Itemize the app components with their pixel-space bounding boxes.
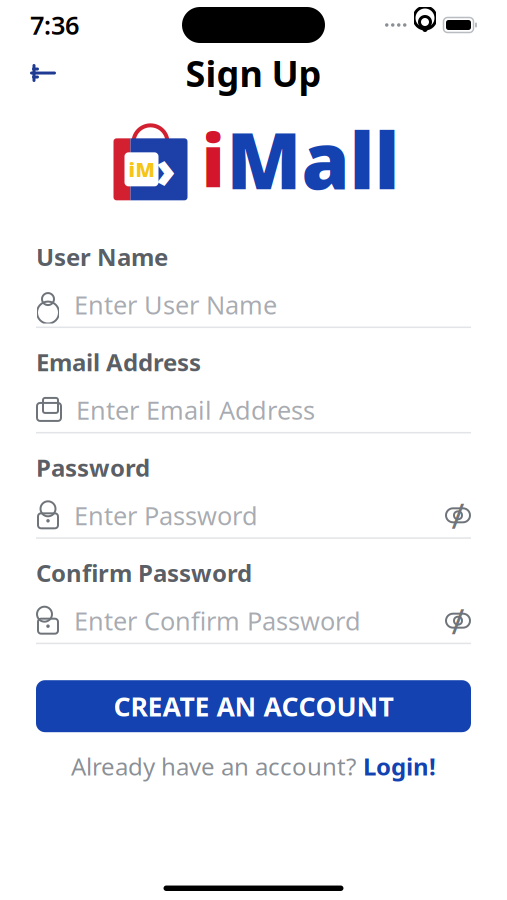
staticText: Mall — [226, 108, 399, 211]
button[interactable]: Show confirm password — [445, 609, 471, 633]
staticText: Enter User Name — [74, 288, 277, 321]
staticText: iM — [128, 156, 154, 183]
button[interactable]: Back — [14, 54, 72, 92]
button[interactable]: Enter Password — [36, 493, 471, 539]
button[interactable]: CREATE AN ACCOUNT — [36, 680, 471, 732]
staticText: Confirm Password — [36, 557, 252, 589]
button[interactable]: Already have an account? — [51, 742, 456, 790]
staticText: Sign Up — [185, 49, 321, 97]
staticText: Email Address — [36, 346, 201, 378]
staticText: 7:36 — [30, 8, 79, 42]
staticText: i — [201, 111, 224, 207]
button[interactable]: Enter Confirm Password — [36, 599, 471, 644]
staticText: User Name — [36, 241, 168, 273]
staticText: Login! — [363, 750, 436, 782]
staticText: / — [451, 492, 464, 538]
button[interactable]: Enter User Name — [36, 283, 471, 328]
staticText: Enter Confirm Password — [74, 604, 361, 637]
button[interactable]: Show password — [445, 503, 471, 527]
staticText: CREATE AN ACCOUNT — [113, 688, 393, 724]
staticText: Already have an account? — [71, 750, 356, 782]
staticText: › — [155, 135, 175, 202]
staticText: / — [451, 598, 464, 644]
staticText: Enter Email Address — [76, 393, 315, 427]
button[interactable]: Enter Email Address — [36, 388, 471, 433]
staticText: Enter Password — [74, 498, 258, 532]
staticText: Password — [36, 451, 150, 483]
